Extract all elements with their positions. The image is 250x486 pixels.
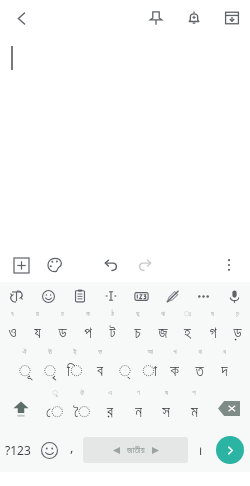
staticText: ও xyxy=(8,326,17,341)
staticText: জ xyxy=(158,326,168,341)
staticText: ষ xyxy=(165,390,168,397)
staticText: গ xyxy=(209,326,217,341)
staticText: এ xyxy=(108,390,112,397)
staticText: ে xyxy=(46,405,63,420)
button[interactable]: খ xyxy=(162,348,187,386)
staticText: ছ xyxy=(136,311,140,318)
button[interactable]: ঐ xyxy=(12,348,37,386)
staticText: শ xyxy=(192,390,196,397)
staticText: ঠ xyxy=(111,311,114,318)
button[interactable]: More options xyxy=(216,252,242,278)
button[interactable]: ্ xyxy=(112,348,137,386)
button[interactable]: এ xyxy=(96,389,124,427)
staticText: হ xyxy=(184,326,191,341)
button[interactable]: Undo xyxy=(98,252,124,278)
staticText: য xyxy=(34,326,41,341)
button[interactable]: শ xyxy=(180,389,208,427)
button[interactable]: Pin xyxy=(142,4,170,32)
button[interactable]: Translate xyxy=(0,282,32,310)
button[interactable]: য় xyxy=(25,310,50,348)
staticText: ই xyxy=(73,349,77,356)
staticText: ু xyxy=(52,390,58,397)
staticText: ভ xyxy=(98,349,102,356)
button[interactable]: ?123 xyxy=(0,428,35,472)
button[interactable]: More xyxy=(188,282,219,310)
button[interactable]: ছ xyxy=(125,310,150,348)
button[interactable]: ই xyxy=(62,348,87,386)
button[interactable]: ঝ xyxy=(150,310,175,348)
button[interactable]: Numbers xyxy=(126,282,157,310)
staticText: আ xyxy=(147,349,153,356)
button[interactable]: Add xyxy=(8,252,34,278)
staticText: ৃ xyxy=(43,364,56,379)
button[interactable]: ধ xyxy=(212,348,237,386)
button[interactable]: ণ xyxy=(124,389,152,427)
button[interactable]: Handwriting off xyxy=(157,282,188,310)
button[interactable]: ঢ xyxy=(50,310,75,348)
button[interactable]: ঘ xyxy=(200,310,225,348)
staticText: ঃ xyxy=(184,311,191,318)
staticText: ত xyxy=(195,364,204,379)
button[interactable]: Reminder xyxy=(180,4,208,32)
staticText: ঢ় xyxy=(236,311,239,318)
button[interactable]: ভ xyxy=(87,348,112,386)
staticText: ?123 xyxy=(5,442,31,458)
button[interactable]: Clipboard xyxy=(64,282,95,310)
staticText: ঊ xyxy=(48,349,52,356)
button[interactable]: Archive xyxy=(218,4,246,32)
staticText: দ xyxy=(221,364,228,379)
staticText: প xyxy=(84,326,92,341)
button[interactable]: ঠ xyxy=(100,310,125,348)
staticText: , xyxy=(70,438,74,456)
button[interactable]: Redo xyxy=(132,252,158,278)
staticText: ্ xyxy=(118,364,131,379)
button[interactable]: ঔ xyxy=(68,389,96,427)
staticText: ম xyxy=(191,405,198,420)
button[interactable]: Send xyxy=(216,436,244,464)
button[interactable]: ঃ xyxy=(175,310,200,348)
staticText: জাতীয় xyxy=(127,446,145,455)
staticText: ি xyxy=(67,364,82,379)
staticText: ড় xyxy=(233,326,242,341)
staticText: ধ xyxy=(223,349,226,356)
staticText: র xyxy=(107,405,113,420)
button[interactable]: Space xyxy=(83,437,188,463)
staticText: ণ xyxy=(137,390,140,397)
button[interactable]: Shift xyxy=(0,388,41,428)
staticText: ট xyxy=(109,326,116,341)
staticText: ৎ xyxy=(11,311,14,318)
staticText: ন xyxy=(135,405,142,420)
staticText: ঝ xyxy=(161,311,165,318)
button[interactable]: Text edit xyxy=(95,282,126,310)
button[interactable]: ৎ xyxy=(0,310,25,348)
button[interactable]: ঊ xyxy=(37,348,62,386)
button[interactable]: Back xyxy=(6,2,38,34)
button[interactable]: Voice input xyxy=(219,282,250,310)
staticText: য় xyxy=(36,311,39,318)
button[interactable]: ঢ় xyxy=(225,310,250,348)
staticText: স xyxy=(162,405,170,420)
staticText: ূ xyxy=(18,364,31,379)
staticText: থ xyxy=(198,349,202,356)
button[interactable]: Emoji xyxy=(32,282,64,310)
staticText: ফ xyxy=(86,311,90,318)
button[interactable]: ফ xyxy=(75,310,100,348)
button[interactable]: Color palette xyxy=(42,252,68,278)
button[interactable]: Backspace xyxy=(208,388,250,428)
staticText: ঐ xyxy=(22,349,27,356)
button[interactable]: , xyxy=(63,428,81,472)
staticText: ড xyxy=(58,326,67,341)
button[interactable]: Emoji xyxy=(35,428,63,472)
button[interactable]: থ xyxy=(187,348,212,386)
staticText: ঘ xyxy=(211,311,214,318)
staticText: । xyxy=(198,442,203,458)
staticText: ঢ xyxy=(61,311,64,318)
button[interactable]: আ xyxy=(137,348,162,386)
button[interactable]: । xyxy=(190,428,210,472)
button[interactable]: ু xyxy=(41,389,68,427)
staticText: ঔ xyxy=(80,390,84,397)
staticText: চ xyxy=(134,326,141,341)
staticText: া xyxy=(142,364,157,379)
button[interactable]: ষ xyxy=(152,389,180,427)
staticText: ক xyxy=(170,364,179,379)
